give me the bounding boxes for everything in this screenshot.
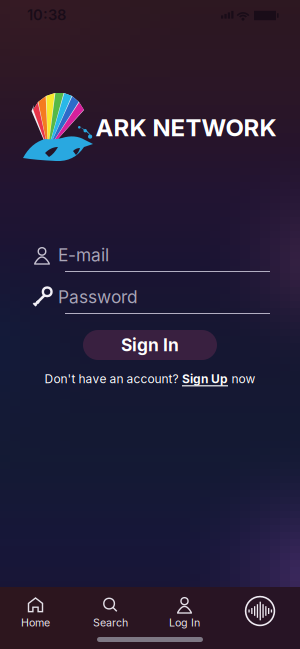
staticText: Don't have an account? [44,372,178,386]
button[interactable]: E-mail [0,0,300,649]
button[interactable]: Home [3,586,67,636]
staticText: Sign Up [182,372,228,386]
button[interactable]: Search [78,586,142,636]
button[interactable] [230,581,290,641]
button[interactable]: Don't have an account? [44,372,255,386]
staticText: now [231,372,255,386]
staticText: Home [21,616,50,629]
staticText: 10:38 [27,6,66,24]
staticText: Password [58,287,138,307]
button[interactable]: Sign In [83,330,217,360]
staticText: Sign In [121,335,179,355]
staticText: Search [93,616,128,629]
button[interactable]: Password [0,0,300,649]
button[interactable]: Log In [152,586,216,636]
staticText: ARK NETWORK [95,113,276,142]
staticText: E-mail [58,245,109,265]
staticText: Log In [169,616,200,629]
